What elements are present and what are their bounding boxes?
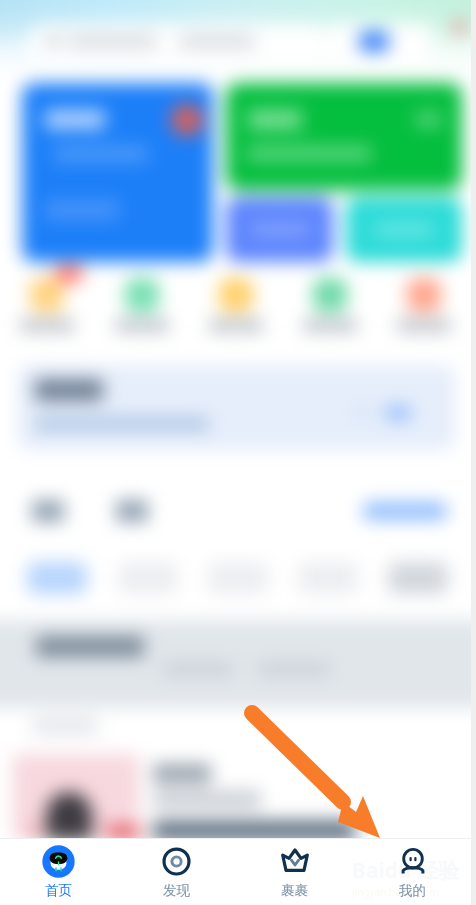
button[interactable]: 发现	[117, 839, 235, 905]
staticText: 发现	[163, 882, 190, 899]
staticText: 首页	[45, 882, 72, 899]
staticText: jingyan.baidu.com	[352, 885, 439, 899]
staticText: Baidu 经验	[352, 856, 460, 885]
button[interactable]: 裹裹	[235, 839, 353, 905]
button[interactable]: 我的	[353, 839, 471, 905]
staticText: 我的	[399, 882, 426, 899]
button[interactable]: 首页	[0, 839, 117, 905]
staticText: 裹裹	[281, 882, 308, 899]
